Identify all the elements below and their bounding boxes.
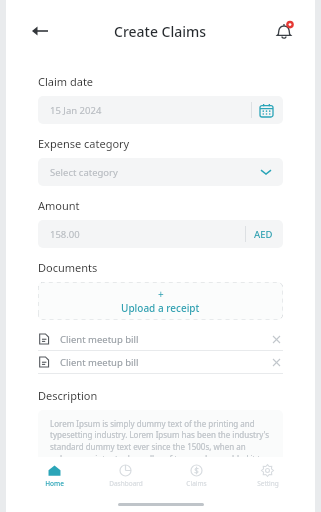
- staticText: Expense category: [38, 136, 130, 151]
- button[interactable]: Lorem Ipsum is simply dummy text of the …: [38, 410, 283, 474]
- staticText: Setting: [257, 479, 279, 488]
- button[interactable]: Claims: [161, 457, 232, 495]
- staticText: Claim date: [38, 74, 94, 89]
- button[interactable]: Dashboard: [90, 457, 161, 495]
- button[interactable]: Setting: [232, 457, 303, 495]
- staticText: Upload a receipt: [121, 301, 200, 315]
- staticText: 15 Jan 2024: [50, 104, 102, 117]
- button[interactable]: Back: [26, 17, 54, 45]
- button[interactable]: 158.00: [38, 220, 283, 248]
- button[interactable]: Client meetup bill: [38, 328, 283, 350]
- staticText: Documents: [38, 260, 98, 275]
- staticText: Dashboard: [109, 479, 143, 488]
- staticText: AED: [254, 228, 273, 241]
- staticText: Description: [38, 388, 98, 403]
- staticText: Create Claims: [114, 22, 207, 41]
- button[interactable]: Notifications: [271, 18, 297, 44]
- staticText: Lorem Ipsum is simply dummy text of the …: [50, 418, 271, 466]
- staticText: Select category: [50, 166, 118, 179]
- button[interactable]: Select category: [38, 158, 283, 186]
- staticText: Client meetup bill: [60, 356, 269, 369]
- staticText: Claims: [186, 479, 207, 488]
- button[interactable]: Client meetup bill: [38, 351, 283, 373]
- staticText: Client meetup bill: [60, 333, 269, 346]
- button[interactable]: Remove: [269, 332, 283, 346]
- button[interactable]: Remove: [269, 355, 283, 369]
- button[interactable]: Home: [18, 457, 90, 495]
- staticText: Amount: [38, 198, 80, 213]
- staticText: +: [158, 287, 164, 301]
- button[interactable]: +: [38, 282, 283, 320]
- staticText: 158.00: [50, 228, 80, 241]
- staticText: Home: [45, 479, 64, 488]
- button[interactable]: 15 Jan 2024: [38, 96, 283, 124]
